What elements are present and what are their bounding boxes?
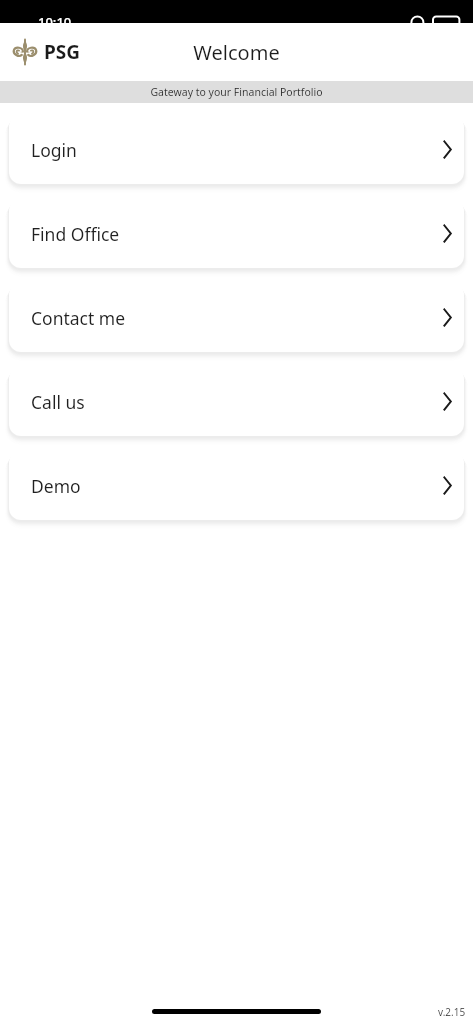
staticText: Demo — [31, 474, 81, 498]
button[interactable]: Login — [9, 115, 464, 184]
staticText: Login — [31, 138, 77, 162]
staticText: 10:10 — [38, 13, 72, 23]
button[interactable]: Demo — [9, 451, 464, 520]
staticText: Call us — [31, 390, 85, 414]
staticText: v.2.15 — [438, 1005, 466, 1019]
staticText: Contact me — [31, 306, 126, 330]
staticText: PSG — [44, 39, 81, 65]
button[interactable]: Call us — [9, 367, 464, 436]
staticText: Gateway to your Financial Portfolio — [150, 85, 323, 99]
staticText: Welcome — [193, 39, 280, 66]
staticText: Find Office — [31, 222, 120, 246]
button[interactable]: Find Office — [9, 199, 464, 268]
button[interactable]: Contact me — [9, 283, 464, 352]
button[interactable]: PSG home — [6, 38, 81, 66]
